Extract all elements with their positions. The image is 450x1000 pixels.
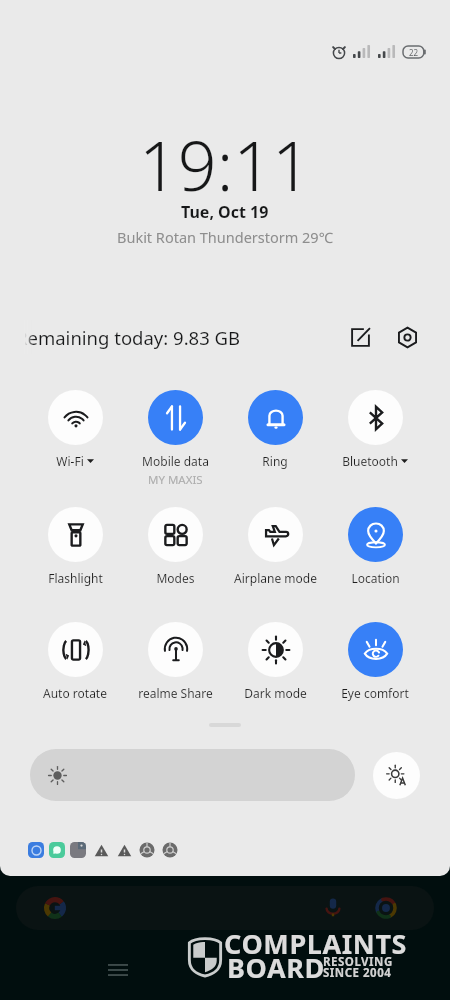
staticText: Auto rotate xyxy=(43,685,107,701)
staticText: Tue, Oct 19 xyxy=(181,201,269,223)
button[interactable]: Location xyxy=(325,503,425,586)
staticText: Airplane mode xyxy=(234,570,317,586)
button[interactable]: Menu xyxy=(104,956,132,984)
button[interactable]: Remaining today: 9.83 GB xyxy=(0,320,250,354)
button[interactable]: Ring xyxy=(225,386,325,469)
staticText: MY MAXIS xyxy=(148,472,203,488)
staticText: Bukit Rotan Thunderstorm 29℃ xyxy=(117,227,334,247)
button[interactable]: Mobile data xyxy=(125,386,225,488)
button[interactable]: Wi-Fi xyxy=(25,386,125,469)
button[interactable]: Dark mode xyxy=(225,618,325,701)
staticText: Modes xyxy=(156,570,195,586)
button[interactable]: realme Share xyxy=(125,618,225,701)
staticText: Mobile data xyxy=(142,453,209,469)
staticText: RESOLVING xyxy=(323,954,393,970)
staticText: Eye comfort xyxy=(341,685,409,701)
staticText: 22 xyxy=(409,47,419,58)
staticText: realme Share xyxy=(138,685,213,701)
button[interactable]: Auto rotate xyxy=(25,618,125,701)
button[interactable]: Edit xyxy=(343,320,377,354)
button[interactable]: Modes xyxy=(125,503,225,586)
staticText: COMPLAINTS xyxy=(224,925,408,962)
staticText: Flashlight xyxy=(48,570,103,586)
button[interactable]: Settings xyxy=(390,320,424,354)
staticText: Dark mode xyxy=(244,685,307,701)
staticText: 19:11 xyxy=(139,118,311,211)
staticText: Wi-Fi xyxy=(56,453,84,469)
button[interactable]: Auto brightness xyxy=(373,752,420,799)
staticText: Bluetooth xyxy=(342,453,398,469)
button[interactable]: Airplane mode xyxy=(225,503,325,586)
button[interactable]: Bluetooth xyxy=(325,386,425,469)
staticText: Remaining today: 9.83 GB xyxy=(16,325,241,350)
button[interactable]: Flashlight xyxy=(25,503,125,586)
staticText: Ring xyxy=(262,453,288,469)
staticText: SINCE 2004 xyxy=(323,965,392,981)
button[interactable]: Search xyxy=(16,886,434,930)
button[interactable]: Brightness xyxy=(30,749,355,801)
staticText: Location xyxy=(351,570,400,586)
staticText: BOARD xyxy=(227,949,325,986)
button[interactable]: Eye comfort xyxy=(325,618,425,701)
